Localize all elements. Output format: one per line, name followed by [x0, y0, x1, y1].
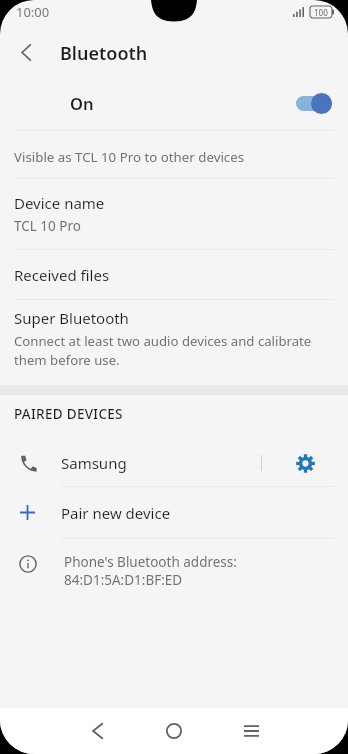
button[interactable]: Home: [143, 708, 205, 754]
button[interactable]: On: [0, 76, 348, 130]
staticText: PAIRED DEVICES: [14, 405, 123, 423]
staticText: Device name: [14, 193, 105, 213]
button[interactable]: Received files: [0, 250, 348, 299]
staticText: TCL 10 Pro: [14, 217, 81, 235]
button[interactable]: Back: [8, 34, 44, 70]
button[interactable]: Samsung: [0, 440, 348, 486]
button[interactable]: Device name: [0, 179, 348, 249]
button[interactable]: Visible as TCL 10 Pro to other devices: [0, 131, 348, 178]
button[interactable]: Back: [66, 708, 128, 754]
staticText: Bluetooth: [60, 41, 148, 66]
staticText: Received files: [14, 265, 110, 285]
staticText: 100: [314, 7, 328, 18]
staticText: On: [70, 92, 94, 114]
staticText: Phone's Bluetooth address:: [64, 553, 237, 571]
staticText: Visible as TCL 10 Pro to other devices: [14, 148, 245, 166]
button[interactable]: Device settings: [262, 440, 348, 486]
staticText: Pair new device: [61, 503, 171, 523]
button[interactable]: Super Bluetooth: [0, 300, 348, 385]
staticText: 84:D1:5A:D1:BF:ED: [64, 571, 183, 589]
button[interactable]: Recents: [220, 708, 282, 754]
staticText: Connect at least two audio devices and c…: [14, 332, 334, 369]
button[interactable]: Pair new device: [0, 487, 348, 538]
staticText: Super Bluetooth: [14, 308, 129, 328]
staticText: Samsung: [61, 453, 127, 473]
staticText: 10:00: [16, 3, 50, 21]
